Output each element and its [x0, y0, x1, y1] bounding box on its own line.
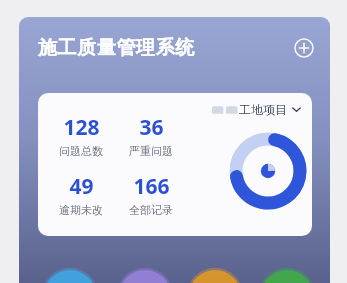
- button[interactable]: 128: [46, 112, 116, 159]
- button[interactable]: Add: [289, 33, 319, 63]
- staticText: 逾期未改: [59, 203, 103, 217]
- staticText: 全部记录: [129, 203, 173, 217]
- button[interactable]: 49: [46, 171, 116, 218]
- staticText: 49: [69, 172, 94, 201]
- staticText: 严重问题: [129, 144, 173, 158]
- button[interactable]: 166: [116, 171, 186, 218]
- staticText: 166: [133, 172, 170, 201]
- staticText: 问题总数: [59, 144, 103, 158]
- button[interactable]: 36: [116, 112, 186, 159]
- button[interactable]: 工地项目: [38, 93, 312, 236]
- staticText: 36: [139, 113, 164, 142]
- staticText: 施工质量管理系统: [38, 36, 195, 60]
- staticText: 128: [63, 113, 100, 142]
- staticText: 工地项目: [239, 102, 287, 117]
- button[interactable]: 工地项目: [210, 100, 303, 119]
